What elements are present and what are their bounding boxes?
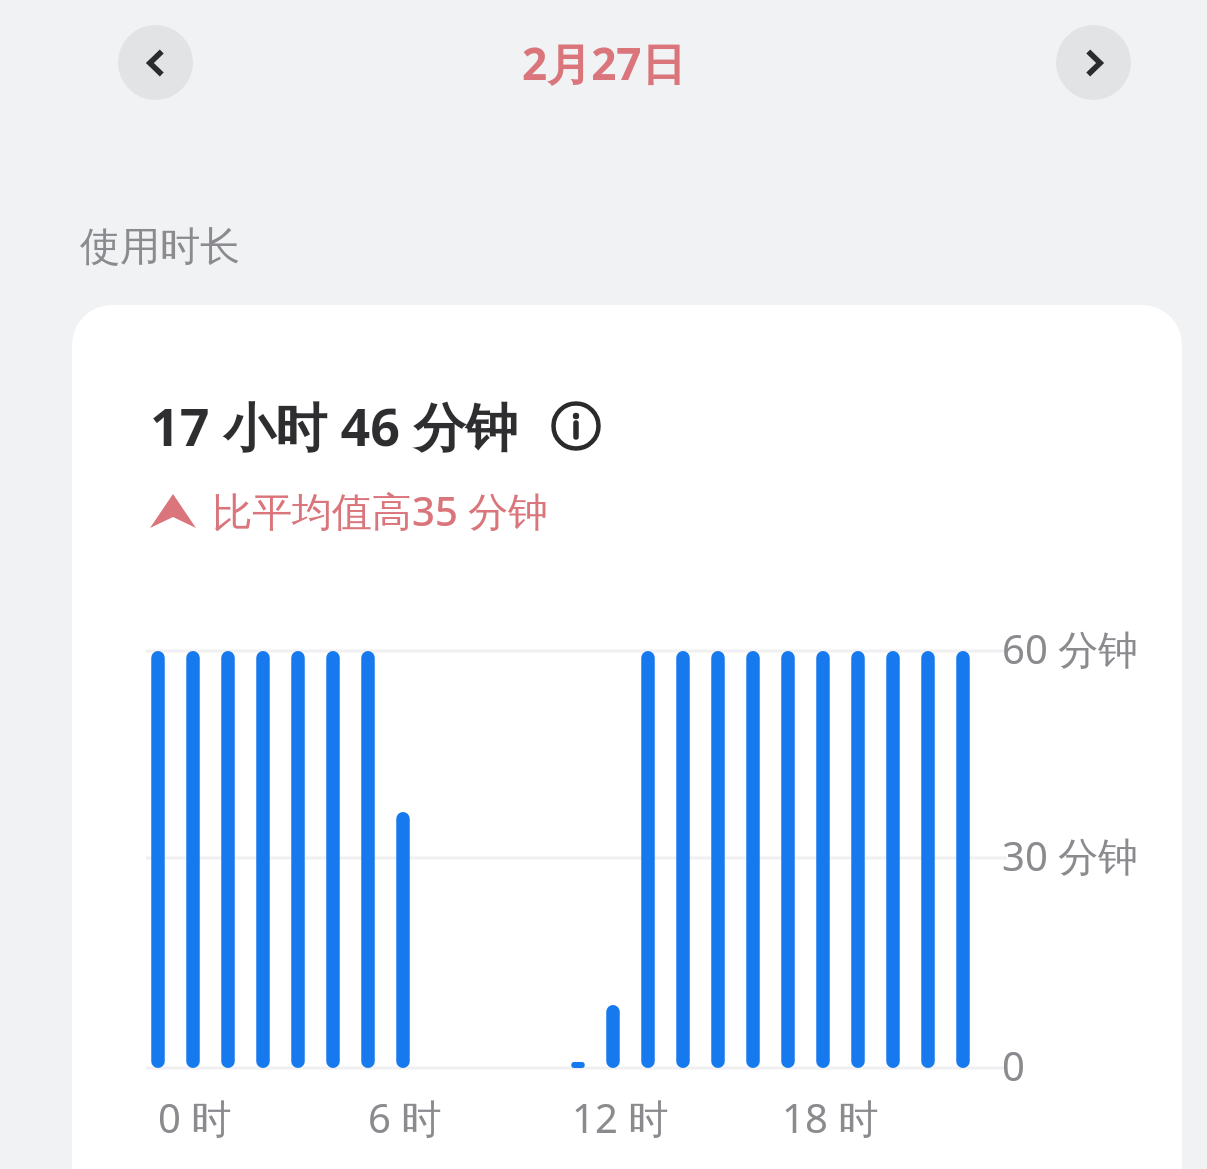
staticText: 60 分钟 <box>1002 621 1139 676</box>
button[interactable]: Previous day <box>118 25 193 100</box>
staticText: 6 时 <box>368 1090 442 1145</box>
staticText: 2月27日 <box>522 33 686 93</box>
button[interactable]: Next day <box>1056 25 1131 100</box>
staticText: 12 时 <box>572 1090 669 1145</box>
staticText: 0 时 <box>158 1090 232 1145</box>
staticText: 30 分钟 <box>1002 828 1139 883</box>
staticText: 比平均值高35 分钟 <box>212 483 549 538</box>
staticText: 0 <box>1002 1038 1025 1092</box>
staticText: 17 小时 46 分钟 <box>150 390 518 461</box>
button[interactable]: Info <box>550 400 602 452</box>
staticText: 使用时长 <box>80 221 240 271</box>
staticText: 18 时 <box>782 1090 879 1145</box>
